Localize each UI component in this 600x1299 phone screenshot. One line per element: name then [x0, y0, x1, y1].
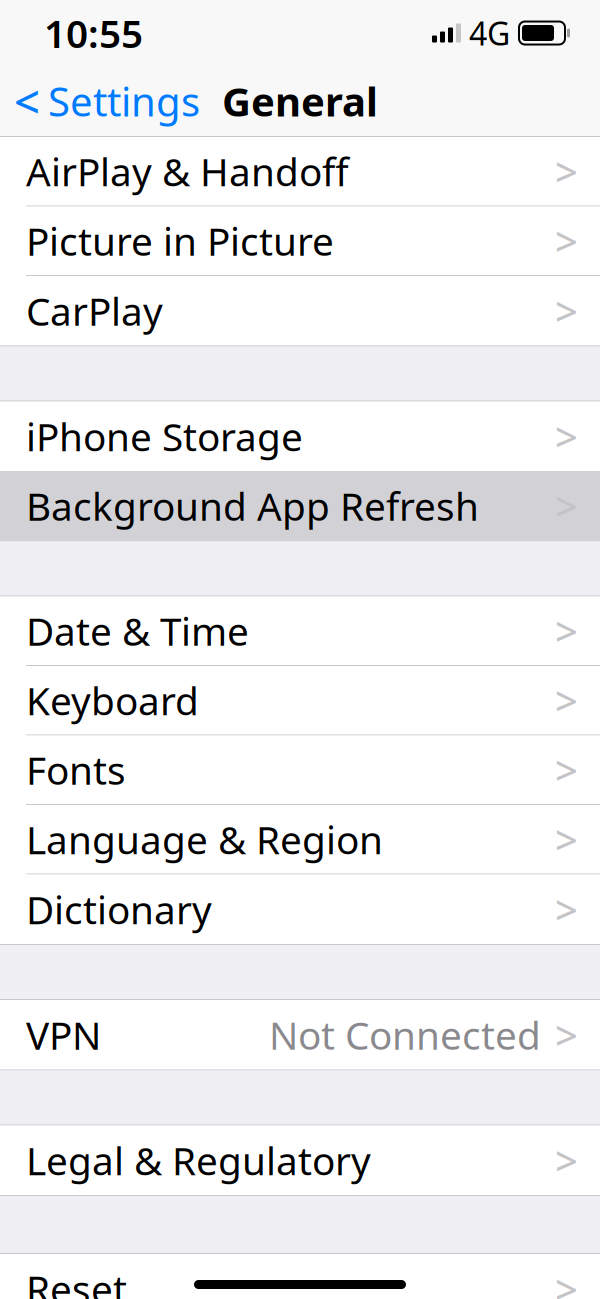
button[interactable]: Keyboard: [0, 666, 600, 735]
staticText: AirPlay & Handoff: [26, 146, 349, 197]
staticText: >: [555, 1008, 578, 1061]
staticText: >: [555, 1262, 578, 1299]
staticText: >: [555, 1134, 578, 1187]
staticText: >: [555, 479, 578, 532]
staticText: Background App Refresh: [26, 480, 479, 531]
staticText: 10:55: [44, 7, 143, 59]
button[interactable]: <: [0, 66, 210, 136]
staticText: >: [555, 604, 578, 657]
staticText: Fonts: [26, 744, 126, 795]
staticText: Reset: [26, 1263, 127, 1299]
button[interactable]: Legal & Regulatory: [0, 1125, 600, 1195]
button[interactable]: Reset: [0, 1254, 600, 1299]
staticText: >: [555, 410, 578, 463]
staticText: >: [555, 214, 578, 267]
button[interactable]: Fonts: [0, 735, 600, 805]
staticText: <: [14, 71, 40, 131]
staticText: Not Connected: [269, 1009, 541, 1060]
staticText: >: [555, 284, 578, 337]
button[interactable]: VPN: [0, 1000, 600, 1069]
staticText: CarPlay: [26, 285, 163, 336]
staticText: >: [555, 743, 578, 796]
button[interactable]: iPhone Storage: [0, 401, 600, 471]
staticText: 4G: [469, 12, 510, 54]
button[interactable]: AirPlay & Handoff: [0, 137, 600, 206]
button[interactable]: Date & Time: [0, 596, 600, 666]
button[interactable]: CarPlay: [0, 276, 600, 345]
staticText: General: [222, 74, 378, 127]
staticText: Settings: [48, 74, 200, 127]
staticText: VPN: [26, 1009, 101, 1060]
staticText: Language & Region: [26, 814, 383, 865]
button[interactable]: Language & Region: [0, 805, 600, 874]
button[interactable]: Dictionary: [0, 874, 600, 944]
button[interactable]: Background App Refresh: [0, 471, 600, 540]
staticText: Legal & Regulatory: [26, 1135, 371, 1186]
staticText: >: [555, 145, 578, 198]
staticText: Keyboard: [26, 675, 199, 726]
staticText: >: [555, 883, 578, 936]
staticText: Picture in Picture: [26, 215, 334, 266]
button[interactable]: Picture in Picture: [0, 206, 600, 276]
staticText: Date & Time: [26, 605, 249, 656]
staticText: Dictionary: [26, 884, 212, 935]
staticText: >: [555, 674, 578, 727]
staticText: >: [555, 813, 578, 866]
staticText: iPhone Storage: [26, 411, 303, 462]
